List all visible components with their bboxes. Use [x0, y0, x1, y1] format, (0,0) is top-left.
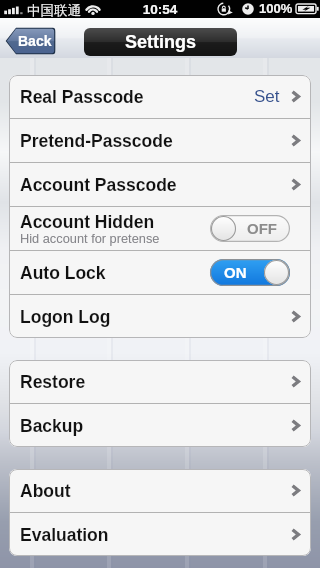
staticText: Hid account for pretense	[20, 231, 160, 245]
button[interactable]: Auto lock on	[210, 259, 290, 286]
staticText: ON	[224, 264, 247, 281]
staticText: Account Passcode	[20, 175, 177, 195]
button[interactable]: Backup	[9, 404, 311, 447]
button[interactable]: Restore	[9, 360, 311, 403]
button[interactable]: Pretend-Passcode	[9, 119, 311, 162]
button[interactable]: Back	[5, 27, 56, 55]
staticText: 100%	[259, 1, 293, 16]
staticText: Logon Log	[20, 307, 111, 327]
button[interactable]: Evaluation	[9, 513, 311, 556]
other: Rotation lock	[217, 0, 235, 18]
staticText: Evaluation	[20, 525, 109, 545]
staticText: Pretend-Passcode	[20, 131, 173, 151]
staticText: Auto Lock	[20, 263, 106, 283]
button[interactable]: Logon Log	[9, 295, 311, 338]
staticText: Set	[254, 87, 280, 106]
button[interactable]: Real Passcode	[9, 75, 311, 118]
button[interactable]: Account Passcode	[9, 163, 311, 206]
button[interactable]: Auto Lock	[9, 251, 311, 294]
staticText: Back	[18, 33, 52, 49]
staticText: Account Hidden	[20, 212, 155, 232]
button[interactable]: Account hidden off	[210, 215, 290, 242]
staticText: Settings	[125, 32, 197, 52]
staticText: About	[20, 481, 71, 501]
staticText: Restore	[20, 372, 86, 392]
staticText: Real Passcode	[20, 87, 144, 107]
staticText: 中国联通	[27, 2, 81, 19]
button[interactable]: Account Hidden	[9, 207, 311, 250]
other: Alarm	[240, 0, 256, 18]
button[interactable]: About	[9, 469, 311, 512]
button[interactable]: Settings	[84, 28, 237, 56]
staticText: Backup	[20, 416, 84, 436]
staticText: OFF	[247, 220, 277, 237]
staticText: 10:54	[0, 2, 320, 17]
